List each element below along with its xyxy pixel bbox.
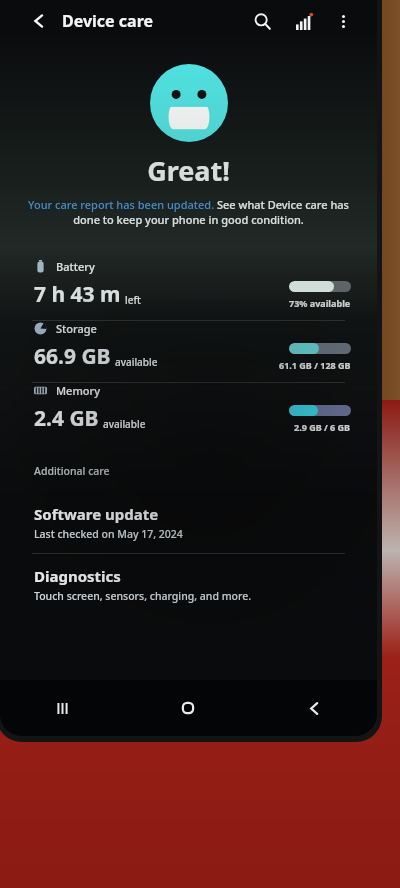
staticText: 66.9 GB [34,342,111,371]
staticText: Great! [0,152,377,189]
button[interactable]: Memory [0,383,377,444]
staticText: Last checked on May 17, 2024 [34,527,183,541]
button[interactable]: Diagnostics [0,554,377,615]
button[interactable]: Home [125,680,251,736]
staticText: left [125,293,141,307]
button[interactable]: Search [247,6,277,36]
staticText: Device care [62,10,154,32]
staticText: Battery [56,259,95,274]
button[interactable]: Usage statistics [289,6,319,36]
staticText: Your care report has been updated. See w… [28,197,349,227]
staticText: Memory [56,383,101,398]
staticText: 7 h 43 m [34,280,121,309]
button[interactable]: Back [26,8,52,34]
staticText: 2.4 GB [34,404,99,433]
staticText: Storage [56,321,97,336]
staticText: available [115,355,158,369]
button[interactable]: More options [329,7,357,35]
staticText: 2.9 GB / 6 GB [294,421,351,433]
staticText: Diagnostics [34,566,121,586]
staticText: Touch screen, sensors, charging, and mor… [34,589,252,603]
button[interactable]: Software update [0,492,377,553]
button[interactable]: Back [251,680,377,736]
staticText: Additional care [34,464,110,478]
staticText: available [103,417,146,431]
staticText: 73% available [289,297,351,309]
button[interactable]: Recents [0,680,125,736]
staticText: 61.1 GB / 128 GB [279,359,351,371]
button[interactable]: Storage [0,321,377,382]
button[interactable]: Battery [0,259,377,320]
staticText: Software update [34,504,159,524]
